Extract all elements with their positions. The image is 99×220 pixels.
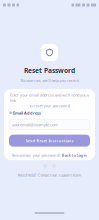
staticText: Email Address xyxy=(13,110,41,116)
staticText: Need help? Contact our support team xyxy=(17,172,81,177)
staticText: Send Reset Instructions xyxy=(25,138,73,143)
staticText: Back to Login xyxy=(61,153,87,158)
button[interactable]: Back to Login xyxy=(61,153,87,158)
staticText: Remember your password? xyxy=(11,153,60,158)
staticText: your.email@example.com xyxy=(12,122,58,127)
button[interactable]: Send Reset Instructions xyxy=(9,135,90,147)
staticText: to reset your password xyxy=(29,103,69,108)
staticText: No worries, we'll help you reset it xyxy=(20,78,78,83)
staticText: Enter your email address and we'll send … xyxy=(10,92,89,103)
staticText: Reset Password xyxy=(24,66,75,75)
button[interactable]: Help xyxy=(43,164,47,168)
button[interactable]: Support xyxy=(52,164,56,168)
staticText: ✉ xyxy=(9,111,12,115)
